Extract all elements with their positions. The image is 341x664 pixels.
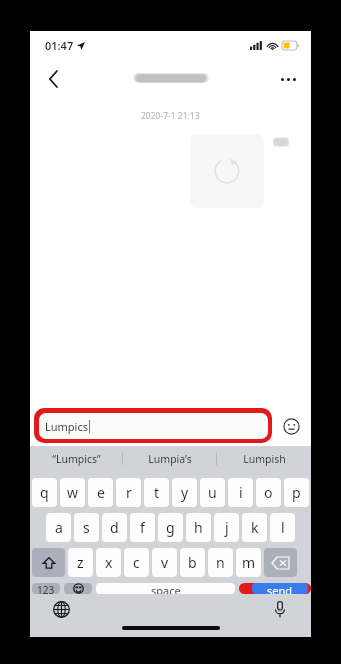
button[interactable]: space <box>96 583 235 594</box>
button[interactable]: Change keyboard language <box>48 596 74 622</box>
button[interactable]: send <box>239 583 311 594</box>
staticText: f <box>140 518 145 537</box>
staticText: send <box>267 583 293 594</box>
button[interactable]: m <box>236 548 261 577</box>
button[interactable]: e <box>88 478 113 507</box>
button[interactable]: q <box>32 478 57 507</box>
button[interactable]: n <box>208 548 233 577</box>
staticText: r <box>126 483 132 502</box>
staticText: k <box>251 518 259 537</box>
button[interactable]: z <box>68 548 93 577</box>
staticText: t <box>154 483 160 502</box>
button[interactable]: c <box>124 548 149 577</box>
staticText: j <box>225 518 229 537</box>
button[interactable]: w <box>60 478 85 507</box>
staticText: m <box>242 553 256 572</box>
button[interactable]: Emoji keyboard <box>64 583 92 594</box>
staticText: space <box>151 583 181 594</box>
staticText: s <box>83 518 90 537</box>
staticText: x <box>105 553 113 572</box>
button[interactable]: o <box>256 478 281 507</box>
button[interactable]: y <box>172 478 197 507</box>
button[interactable]: f <box>130 513 155 542</box>
staticText: “Lumpics” <box>52 452 101 466</box>
button[interactable]: x <box>96 548 121 577</box>
staticText: d <box>110 518 119 537</box>
button[interactable]: a <box>46 513 71 542</box>
staticText: b <box>188 553 197 572</box>
button[interactable]: Shift <box>32 548 65 577</box>
button[interactable]: Lumpics <box>34 408 272 443</box>
staticText: a <box>55 518 63 537</box>
button[interactable]: Lumpish <box>217 446 311 471</box>
staticText: y <box>181 483 189 502</box>
button[interactable]: p <box>284 478 309 507</box>
button[interactable]: h <box>186 513 211 542</box>
button[interactable]: More options <box>271 62 305 96</box>
staticText: u <box>208 483 217 502</box>
button[interactable]: d <box>102 513 127 542</box>
button[interactable]: Lumpia’s <box>123 446 217 471</box>
button[interactable]: Emoji <box>279 414 303 438</box>
staticText: e <box>97 483 105 502</box>
button[interactable]: Backspace <box>264 548 297 577</box>
staticText: p <box>292 483 301 502</box>
button[interactable]: v <box>152 548 177 577</box>
button[interactable]: s <box>74 513 99 542</box>
button[interactable]: r <box>116 478 141 507</box>
button[interactable]: Back <box>36 62 70 96</box>
staticText: g <box>166 518 175 537</box>
staticText: Lumpish <box>243 452 286 466</box>
button[interactable]: “Lumpics” <box>30 446 123 471</box>
button[interactable]: u <box>200 478 225 507</box>
staticText: Lumpia’s <box>148 452 192 466</box>
staticText: c <box>133 553 140 572</box>
staticText: 123 <box>37 583 55 594</box>
staticText: z <box>77 553 84 572</box>
button[interactable]: l <box>270 513 295 542</box>
staticText: w <box>67 483 79 502</box>
button[interactable]: b <box>180 548 205 577</box>
staticText: h <box>194 518 203 537</box>
staticText: 01:47 <box>45 38 74 53</box>
staticText: o <box>264 483 273 502</box>
staticText: q <box>40 483 49 502</box>
button[interactable]: g <box>158 513 183 542</box>
button[interactable]: t <box>144 478 169 507</box>
staticText: l <box>281 518 285 537</box>
button[interactable]: i <box>228 478 253 507</box>
button[interactable]: j <box>214 513 239 542</box>
staticText: v <box>161 553 169 572</box>
staticText: i <box>239 483 243 502</box>
staticText: 2020-7-1 21:13 <box>141 110 200 122</box>
button[interactable]: Dictation <box>267 596 293 622</box>
staticText: n <box>216 553 225 572</box>
staticText: Lumpics <box>45 419 88 434</box>
button[interactable]: 123 <box>32 583 60 594</box>
button[interactable]: k <box>242 513 267 542</box>
